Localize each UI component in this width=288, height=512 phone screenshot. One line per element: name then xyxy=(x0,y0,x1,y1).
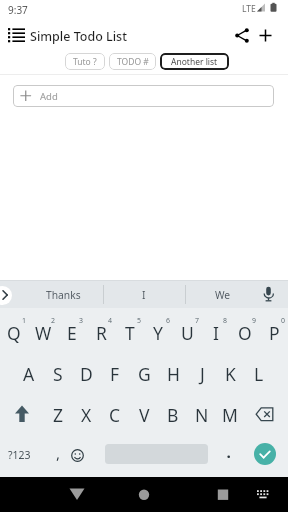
button[interactable]: K xyxy=(216,354,244,394)
button[interactable]: S xyxy=(44,354,72,394)
staticText: R xyxy=(96,321,107,345)
staticText: V xyxy=(139,403,150,427)
button[interactable] xyxy=(6,26,28,46)
button[interactable] xyxy=(251,482,275,506)
button[interactable]: E xyxy=(58,313,86,353)
staticText: 6 xyxy=(166,316,171,326)
button[interactable]: O xyxy=(231,313,259,353)
button[interactable]: Thanks xyxy=(23,282,103,308)
staticText: S xyxy=(53,362,63,386)
button[interactable]: , xyxy=(46,433,70,473)
button[interactable]: G xyxy=(130,354,158,394)
button[interactable] xyxy=(259,285,278,304)
button[interactable]: P xyxy=(260,313,288,353)
staticText: I xyxy=(142,288,146,302)
staticText: 4 xyxy=(108,316,113,326)
staticText: 5 xyxy=(137,316,142,326)
button[interactable]: C xyxy=(101,395,129,435)
staticText: LTE xyxy=(242,3,256,15)
staticText: Thanks xyxy=(46,288,81,302)
button[interactable]: Z xyxy=(44,395,72,435)
button[interactable] xyxy=(257,27,274,44)
staticText: L xyxy=(254,362,264,386)
button[interactable]: M xyxy=(216,395,244,435)
staticText: 9:37 xyxy=(8,3,28,17)
staticText: Simple Todo List xyxy=(30,28,127,45)
staticText: C xyxy=(109,403,121,427)
staticText: A xyxy=(23,362,35,386)
staticText: N xyxy=(195,403,209,427)
button[interactable]: N xyxy=(188,395,216,435)
staticText: B xyxy=(167,403,179,427)
staticText: 3 xyxy=(79,316,84,326)
button[interactable]: Y xyxy=(144,313,172,353)
staticText: 9 xyxy=(252,316,257,326)
button[interactable]: H xyxy=(159,354,187,394)
staticText: G xyxy=(138,362,151,386)
button[interactable]: L xyxy=(245,354,273,394)
staticText: 7 xyxy=(195,316,200,326)
button[interactable] xyxy=(66,444,89,467)
staticText: Q xyxy=(7,321,21,345)
button[interactable] xyxy=(0,286,12,305)
staticText: Y xyxy=(153,321,163,345)
staticText: Z xyxy=(53,403,64,427)
button[interactable]: A xyxy=(15,354,43,394)
button[interactable]: J xyxy=(188,354,216,394)
staticText: Another list xyxy=(171,56,218,68)
button[interactable]: Q xyxy=(0,313,28,353)
staticText: P xyxy=(269,321,280,345)
staticText: 1 xyxy=(22,316,27,326)
button[interactable]: We xyxy=(193,282,253,308)
staticText: X xyxy=(81,403,92,427)
button[interactable] xyxy=(234,27,251,44)
button[interactable]: R xyxy=(87,313,115,353)
staticText: E xyxy=(67,321,77,345)
staticText: D xyxy=(80,362,93,386)
button[interactable] xyxy=(254,443,276,465)
button[interactable]: V xyxy=(130,395,158,435)
staticText: T xyxy=(125,321,135,345)
button[interactable] xyxy=(211,482,235,506)
button[interactable]: Tuto ? xyxy=(65,53,105,70)
staticText: O xyxy=(238,321,252,345)
staticText: 8 xyxy=(223,316,228,326)
staticText: F xyxy=(110,362,120,386)
staticText: U xyxy=(181,321,194,345)
staticText: , xyxy=(56,443,61,463)
staticText: ?123 xyxy=(8,448,31,462)
button[interactable] xyxy=(132,482,156,506)
button[interactable]: U xyxy=(173,313,201,353)
button[interactable]: ?123 xyxy=(1,435,37,475)
staticText: We xyxy=(215,288,231,302)
staticText: 0 xyxy=(281,316,286,326)
staticText: 2 xyxy=(51,316,56,326)
staticText: Tuto ? xyxy=(73,56,97,68)
staticText: J xyxy=(200,362,205,386)
button[interactable]: D xyxy=(72,354,100,394)
staticText: K xyxy=(225,362,236,386)
button[interactable]: B xyxy=(159,395,187,435)
button[interactable]: Another list xyxy=(160,53,229,70)
staticText: TODO # xyxy=(117,56,149,68)
staticText: H xyxy=(167,362,180,386)
staticText: I xyxy=(213,321,219,345)
button[interactable]: T xyxy=(116,313,144,353)
button[interactable]: X xyxy=(72,395,100,435)
staticText: W xyxy=(35,321,52,345)
staticText: Add xyxy=(40,90,58,103)
button[interactable]: I xyxy=(109,282,179,308)
staticText: M xyxy=(222,403,238,427)
button[interactable]: TODO # xyxy=(109,53,156,70)
button[interactable]: I xyxy=(202,313,230,353)
button[interactable] xyxy=(8,400,36,428)
button[interactable]: Add xyxy=(13,85,274,107)
button[interactable] xyxy=(65,482,89,506)
button[interactable]: F xyxy=(101,354,129,394)
button[interactable] xyxy=(251,400,279,428)
button[interactable]: W xyxy=(29,313,57,353)
